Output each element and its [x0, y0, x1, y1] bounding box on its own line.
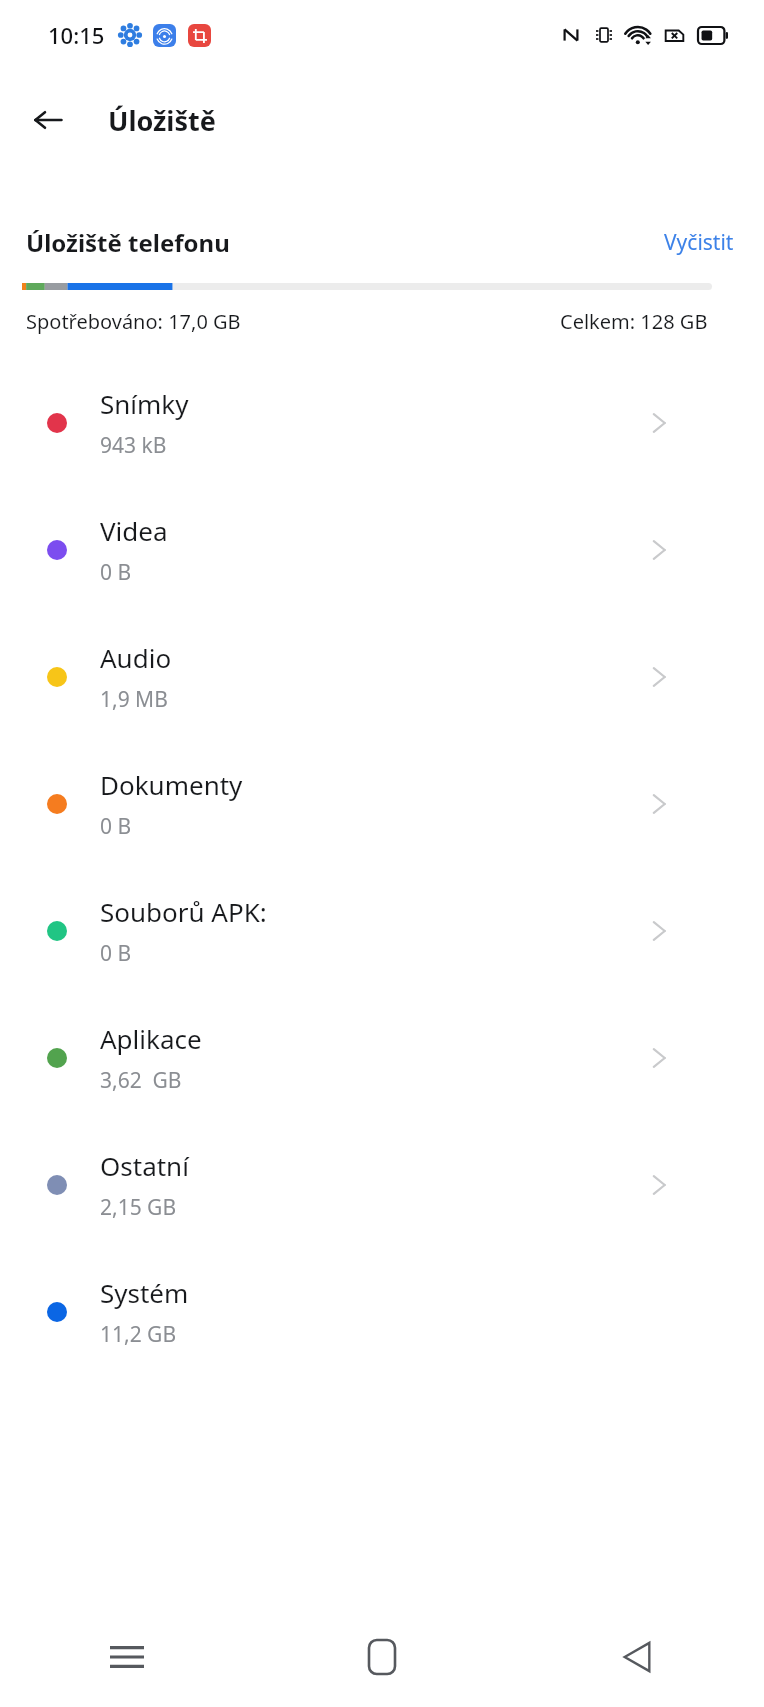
staticText: Aplikace [100, 1021, 202, 1056]
staticText: 11,2 GB [100, 1320, 177, 1349]
button[interactable]: Vyčistit [660, 224, 738, 261]
staticText: Vyčistit [664, 228, 734, 257]
staticText: Dokumenty [100, 767, 243, 802]
button[interactable]: Audio [0, 613, 764, 740]
staticText: 2,15 GB [100, 1193, 177, 1222]
button[interactable]: Back [509, 1607, 764, 1707]
button[interactable]: Recent apps [0, 1607, 254, 1707]
staticText: 0 B [100, 812, 132, 841]
staticText: Audio [100, 640, 172, 675]
button[interactable]: Home [254, 1607, 509, 1707]
staticText: Snímky [100, 386, 189, 421]
button[interactable]: Snímky [0, 359, 764, 486]
button[interactable]: Aplikace [0, 994, 764, 1121]
staticText: 1,9 MB [100, 685, 168, 714]
staticText: Systém [100, 1275, 189, 1310]
button[interactable]: Systém [0, 1248, 764, 1375]
button[interactable]: Dokumenty [0, 740, 764, 867]
staticText: 10:15 [48, 20, 105, 50]
staticText: 0 B [100, 939, 132, 968]
staticText: Úložiště [108, 102, 216, 139]
staticText: 3,62 GB [100, 1066, 182, 1095]
button[interactable]: Ostatní [0, 1121, 764, 1248]
staticText: 0 B [100, 558, 132, 587]
staticText: Ostatní [100, 1148, 189, 1183]
button[interactable]: Videa [0, 486, 764, 613]
staticText: Spotřebováno: 17,0 GB [26, 308, 241, 335]
button[interactable]: Souborů APK: [0, 867, 764, 994]
staticText: Souborů APK: [100, 894, 267, 929]
staticText: 943 kB [100, 431, 167, 460]
staticText: Celkem: 128 GB [560, 308, 708, 335]
staticText: Videa [100, 513, 168, 548]
button[interactable]: Back [20, 92, 76, 148]
staticText: Úložiště telefonu [26, 226, 230, 259]
